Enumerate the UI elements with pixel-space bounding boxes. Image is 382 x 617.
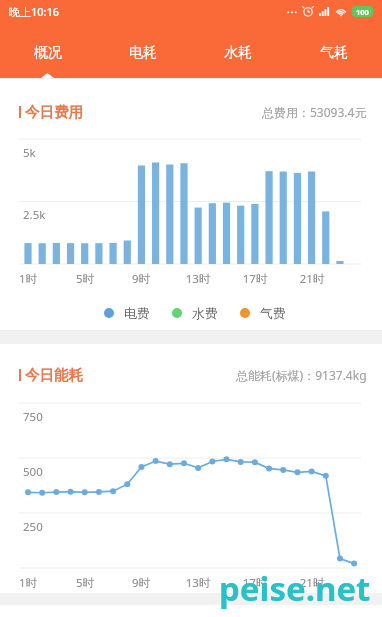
staticText: 今日费用 [25, 103, 83, 121]
staticText: 500 [23, 464, 43, 480]
button[interactable]: 水费 [172, 305, 218, 321]
staticText: 气费 [260, 305, 286, 321]
staticText: 5时 [70, 271, 100, 287]
staticText: 2.5k [23, 207, 46, 223]
staticText: 5时 [70, 575, 100, 591]
staticText: 总能耗(标煤)：9137.4kg [236, 367, 367, 383]
staticText: 气耗 [320, 44, 348, 62]
staticText: 13时 [183, 271, 213, 287]
staticText: 21时 [297, 271, 327, 287]
staticText: peise.net [219, 566, 371, 611]
staticText: 电耗 [129, 44, 157, 62]
staticText: 9时 [126, 271, 156, 287]
staticText: 17时 [240, 271, 270, 287]
button[interactable]: 概况 [0, 28, 95, 78]
staticText: 1时 [13, 271, 43, 287]
staticText: 750 [23, 409, 43, 425]
staticText: 水耗 [224, 44, 252, 62]
staticText: 1时 [13, 575, 43, 591]
staticText: 9时 [126, 575, 156, 591]
button[interactable]: 水耗 [190, 28, 286, 78]
staticText: 21时 [297, 575, 327, 591]
button[interactable]: 气费 [240, 305, 286, 321]
staticText: 100 [356, 7, 369, 17]
staticText: 概况 [34, 44, 62, 62]
staticText: 250 [23, 519, 43, 535]
staticText: 电费 [124, 305, 150, 321]
staticText: 总费用：53093.4元 [262, 104, 367, 120]
button[interactable]: 气耗 [286, 28, 382, 78]
button[interactable]: 电费 [104, 305, 150, 321]
button[interactable]: 电耗 [95, 28, 190, 78]
staticText: 17时 [240, 575, 270, 591]
staticText: 晚上10:16 [9, 4, 60, 19]
staticText: 13时 [183, 575, 213, 591]
staticText: 5k [23, 145, 36, 161]
staticText: 水费 [192, 305, 218, 321]
staticText: 今日能耗 [25, 366, 83, 384]
